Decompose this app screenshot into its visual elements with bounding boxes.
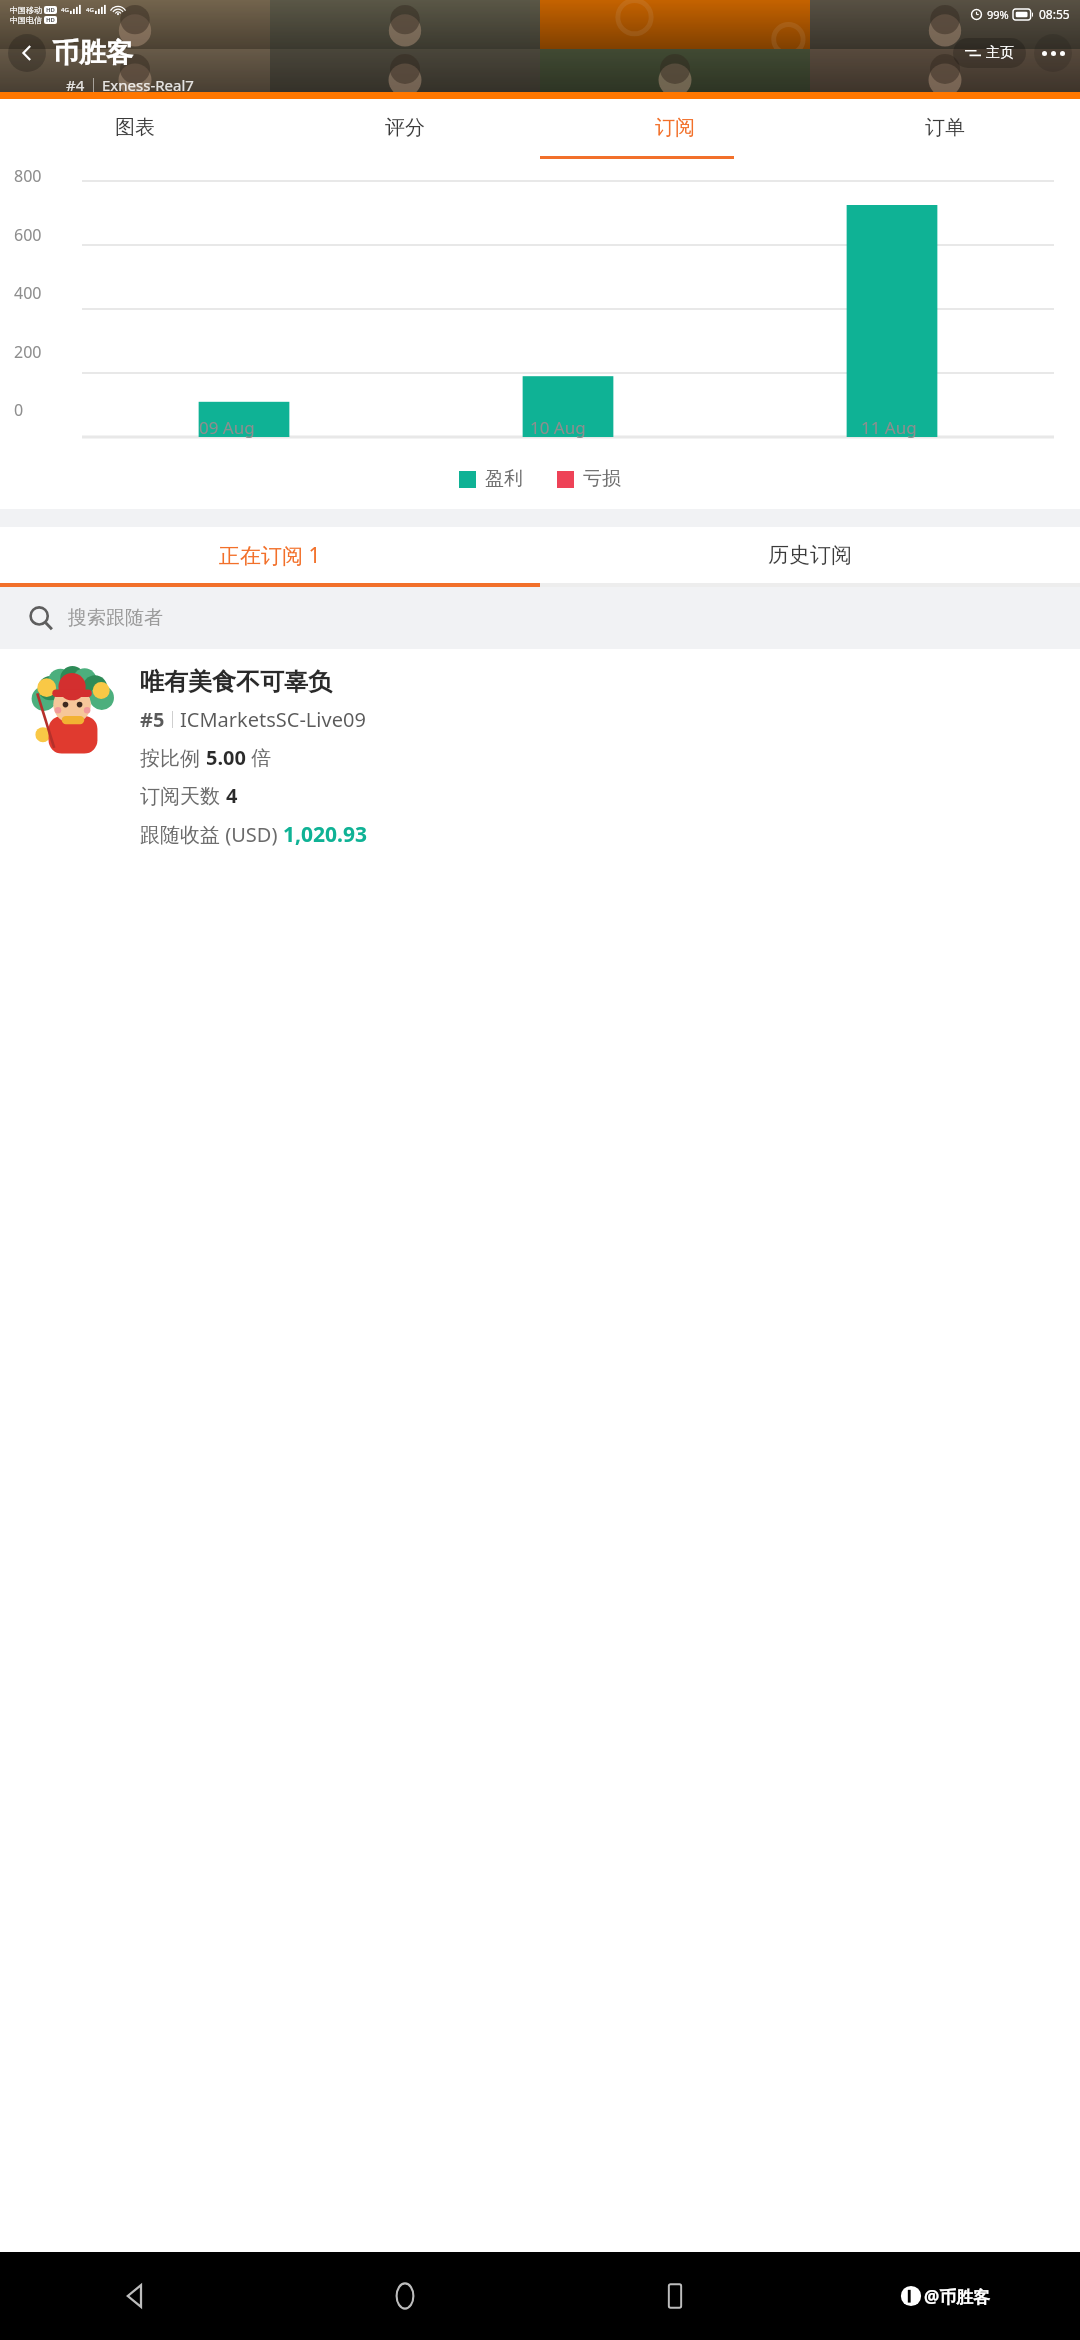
staticText: 4G [61, 6, 69, 14]
staticText: 10 Aug [530, 416, 586, 439]
staticText: 800 [14, 165, 42, 187]
staticText: 历史订阅 [768, 542, 852, 568]
button[interactable]: 唯有美食不可辜负 [0, 649, 1080, 867]
staticText: 中国移动 [10, 5, 42, 15]
staticText: HD [46, 6, 55, 14]
button[interactable]: 图表 [0, 99, 270, 156]
button[interactable]: 主页 [953, 38, 1026, 68]
staticText: 图表 [115, 115, 155, 140]
staticText: 倍 [246, 744, 272, 771]
staticText: #5 [140, 706, 165, 733]
button[interactable]: 历史订阅 [540, 527, 1080, 583]
staticText: 600 [14, 224, 42, 246]
staticText: 订阅天数 [140, 782, 226, 809]
button[interactable]: Home [270, 2252, 540, 2340]
staticText: 08:55 [1039, 6, 1070, 22]
staticText: 200 [14, 341, 42, 363]
staticText: 11 Aug [861, 416, 917, 439]
staticText: @币胜客 [924, 2285, 991, 2308]
staticText: #4 [66, 75, 85, 95]
staticText: 订阅 [655, 115, 695, 140]
button[interactable]: 亏损 [557, 467, 621, 491]
button[interactable]: Back [0, 2252, 270, 2340]
staticText: 09 Aug [199, 416, 255, 439]
staticText: 主页 [986, 44, 1014, 62]
staticText: 唯有美食不可辜负 [140, 667, 332, 697]
button[interactable]: 搜索跟随者 [0, 587, 1080, 649]
button[interactable]: Back [8, 34, 46, 72]
button[interactable]: Recent apps [540, 2252, 810, 2340]
button[interactable]: 评分 [270, 99, 540, 156]
button[interactable]: 盈利 [459, 467, 523, 491]
staticText: 正在订阅 1 [219, 541, 321, 570]
staticText: 亏损 [583, 467, 621, 491]
button[interactable]: 正在订阅 1 [0, 527, 540, 583]
staticText: 4 [226, 782, 238, 809]
button[interactable]: 订阅 [540, 99, 810, 156]
staticText: 中国电信 [10, 15, 42, 25]
staticText: 币胜客 [52, 36, 133, 70]
staticText: Exness-Real7 [102, 75, 194, 95]
staticText: 400 [14, 282, 42, 304]
button[interactable]: More options [1034, 34, 1072, 72]
staticText: 评分 [385, 115, 425, 140]
staticText: 订单 [925, 115, 965, 140]
staticText: 按比例 [140, 744, 206, 771]
staticText: 99% [987, 7, 1009, 22]
staticText: 5.00 [206, 744, 246, 771]
button[interactable]: 订单 [810, 99, 1080, 156]
staticText: 跟随收益 (USD) [140, 821, 283, 848]
staticText: 1,020.93 [283, 820, 367, 849]
staticText: 搜索跟随者 [68, 606, 163, 630]
staticText: ICMarketsSC-Live09 [180, 706, 366, 733]
staticText: 盈利 [485, 467, 523, 491]
staticText: 0 [14, 399, 24, 421]
staticText: 4G [86, 6, 94, 14]
staticText: HD [46, 16, 55, 24]
